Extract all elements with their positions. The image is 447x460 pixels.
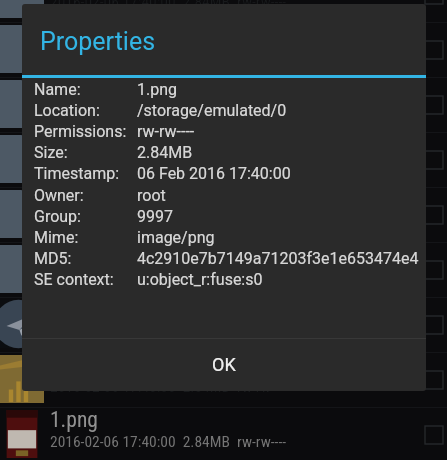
staticText: Name:: [34, 80, 81, 99]
staticText: 2.84MB: [137, 143, 193, 162]
staticText: u:object_r:fuse:s0: [137, 270, 263, 289]
staticText: 1.png: [50, 187, 98, 212]
staticText: Mime:: [34, 228, 79, 247]
button[interactable]: 1.png: [0, 77, 447, 132]
staticText: 1.png: [50, 132, 98, 157]
button[interactable]: 1.png: [0, 407, 447, 460]
staticText: 1.png: [50, 77, 98, 102]
button[interactable]: Select file: [425, 206, 443, 224]
button[interactable]: 1.png: [0, 352, 447, 407]
staticText: MD5:: [34, 249, 72, 268]
staticText: OK: [212, 354, 236, 375]
staticText: 2016-02-06 17:40:00 2.84MB rw-rw----: [50, 433, 287, 451]
staticText: 2016-02-06 17:40:00 2.84MB rw-rw----: [50, 158, 287, 176]
staticText: 2016-02-06 17:40:00 2.84MB rw-rw----: [50, 268, 287, 286]
button[interactable]: Select file: [425, 261, 443, 279]
staticText: root: [137, 186, 166, 205]
staticText: 9997: [137, 207, 173, 226]
staticText: 1.png: [137, 80, 178, 99]
button[interactable]: 1.png: [0, 132, 447, 187]
staticText: 2016-02-06 17:40:00 2.84MB rw-rw----: [50, 103, 287, 121]
staticText: Size:: [34, 143, 68, 162]
staticText: 2016-02-06 17:40:00 2.84MB rw-rw----: [50, 0, 287, 11]
button[interactable]: Select file: [425, 316, 443, 334]
button[interactable]: Select file: [425, 0, 443, 4]
button[interactable]: 1.png: [0, 187, 447, 242]
staticText: 2016-02-06 17:40:00 2.84MB rw-rw----: [50, 213, 287, 231]
staticText: 1.png: [50, 407, 98, 432]
button[interactable]: Select file: [425, 371, 443, 389]
button[interactable]: Select file: [425, 41, 443, 59]
button[interactable]: 1.png: [0, 22, 447, 77]
staticText: 2016-02-06 17:40:00 2.84MB rw-rw----: [50, 378, 287, 396]
staticText: 1.png: [50, 242, 98, 267]
staticText: Properties: [40, 27, 156, 56]
button[interactable]: Select file: [425, 96, 443, 114]
button[interactable]: OK: [22, 338, 426, 391]
button[interactable]: Select file: [425, 426, 443, 444]
staticText: Owner:: [34, 186, 84, 205]
button[interactable]: Select file: [425, 151, 443, 169]
staticText: 2016-02-06 17:40:00 2.84MB rw-rw----: [50, 48, 287, 66]
staticText: Timestamp:: [34, 164, 120, 183]
button[interactable]: 1.png: [0, 0, 447, 22]
staticText: Permissions:: [34, 122, 127, 141]
button[interactable]: 1.png: [0, 297, 447, 352]
staticText: SE context:: [34, 270, 114, 289]
staticText: image/png: [137, 228, 215, 247]
staticText: Group:: [34, 207, 81, 226]
staticText: rw-rw----: [137, 122, 195, 141]
staticText: 4c2910e7b7149a71203f3e1e653474e4: [137, 249, 419, 268]
staticText: /storage/emulated/0: [137, 101, 287, 120]
staticText: 06 Feb 2016 17:40:00: [137, 164, 291, 183]
staticText: 1.png: [50, 22, 98, 47]
button[interactable]: 1.png: [0, 242, 447, 297]
staticText: 2016-02-06 17:40:00 2.84MB rw-rw----: [50, 323, 287, 341]
staticText: Location:: [34, 101, 100, 120]
